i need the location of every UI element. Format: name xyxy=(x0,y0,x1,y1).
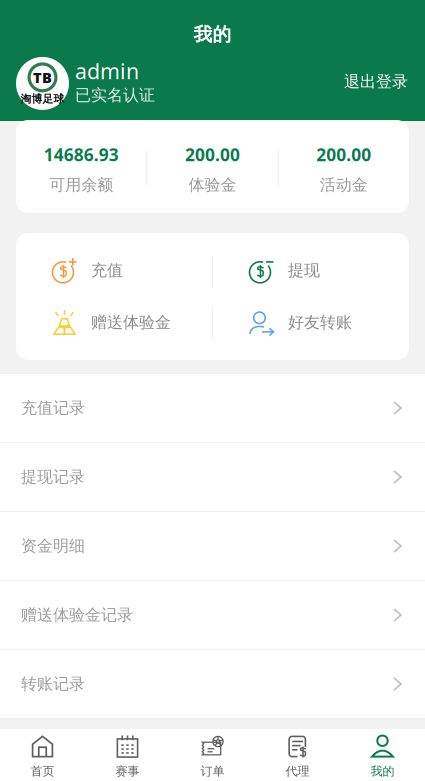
button[interactable]: 代理 xyxy=(255,729,340,781)
staticText: 已实名认证 xyxy=(75,85,155,105)
button[interactable]: 退出登录 xyxy=(342,65,410,99)
staticText: 赠送体验金 xyxy=(91,313,171,332)
staticText: 淘博足球 xyxy=(20,92,64,105)
staticText: 我的 xyxy=(370,764,394,779)
staticText: 14686.93 xyxy=(44,143,119,166)
staticText: 200.00 xyxy=(185,143,240,166)
staticText: 充值记录 xyxy=(21,398,85,418)
button[interactable]: 提现记录 xyxy=(0,443,425,512)
staticText: admin xyxy=(75,57,139,85)
button[interactable]: 提现 xyxy=(213,244,409,296)
staticText: 代理 xyxy=(285,764,309,779)
button[interactable]: 首页 xyxy=(0,729,85,781)
button[interactable]: 赠送体验金记录 xyxy=(0,581,425,650)
staticText: 订单 xyxy=(200,764,224,779)
staticText: 200.00 xyxy=(316,143,371,166)
staticText: TB xyxy=(33,68,52,87)
staticText: 活动金 xyxy=(320,175,368,195)
button[interactable]: 好友转账 xyxy=(213,296,409,348)
staticText: 赛事 xyxy=(115,764,139,779)
button[interactable]: 充值 xyxy=(16,244,212,296)
button[interactable]: 资金明细 xyxy=(0,512,425,581)
staticText: 退出登录 xyxy=(344,72,408,92)
button[interactable]: 充值记录 xyxy=(0,374,425,443)
button[interactable]: 赛事 xyxy=(85,729,170,781)
staticText: 资金明细 xyxy=(21,536,85,556)
staticText: 好友转账 xyxy=(288,313,352,332)
button[interactable]: 我的 xyxy=(340,729,425,781)
staticText: 我的 xyxy=(193,23,231,46)
button[interactable]: 赠送体验金 xyxy=(16,296,212,348)
staticText: 提现 xyxy=(288,261,320,280)
staticText: 赠送体验金记录 xyxy=(21,605,133,625)
button[interactable]: 订单 xyxy=(170,729,255,781)
staticText: 充值 xyxy=(91,261,123,280)
staticText: 可用余额 xyxy=(49,175,113,195)
staticText: 首页 xyxy=(30,764,54,779)
button[interactable]: 转账记录 xyxy=(0,650,425,718)
staticText: 转账记录 xyxy=(21,674,85,694)
staticText: 提现记录 xyxy=(21,467,85,487)
staticText: 体验金 xyxy=(188,175,236,195)
